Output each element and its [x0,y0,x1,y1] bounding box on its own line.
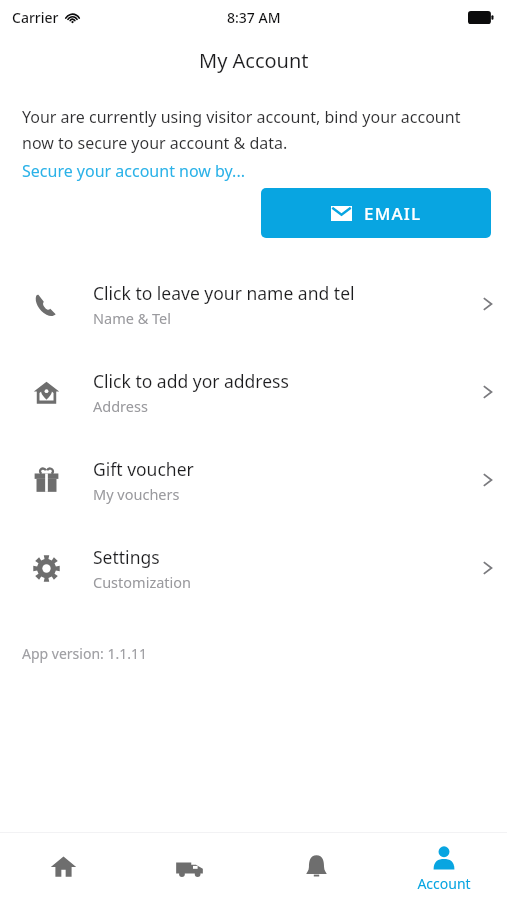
staticText: Name & Tel [93,308,172,328]
staticText: Click to leave your name and tel [93,281,355,305]
button[interactable]: Settings [0,524,507,612]
staticText: My Account [199,47,309,74]
staticText: Customization [93,572,192,592]
staticText: My vouchers [93,484,180,504]
staticText: App version: 1.1.11 [22,644,147,663]
staticText: Carrier [12,8,59,27]
button[interactable]: Secure your account now by... [22,160,245,182]
button[interactable]: Home [0,833,126,900]
button[interactable]: Gift voucher [0,436,507,524]
staticText: Secure your account now by... [22,160,245,182]
button[interactable]: EMAIL [261,188,491,238]
staticText: Gift voucher [93,457,194,481]
staticText: Your are currently using visitor account… [22,106,477,154]
staticText: Settings [93,545,160,569]
button[interactable]: Click to leave your name and tel [0,260,507,348]
button[interactable]: Click to add yor address [0,348,507,436]
staticText: Address [93,396,148,416]
staticText: Click to add yor address [93,369,289,393]
staticText: Account [417,874,471,893]
staticText: EMAIL [364,202,422,225]
button[interactable]: Account [380,833,507,900]
button[interactable]: Notifications [253,833,380,900]
staticText: 8:37 AM [227,8,281,27]
button[interactable]: Deliveries [126,833,253,900]
